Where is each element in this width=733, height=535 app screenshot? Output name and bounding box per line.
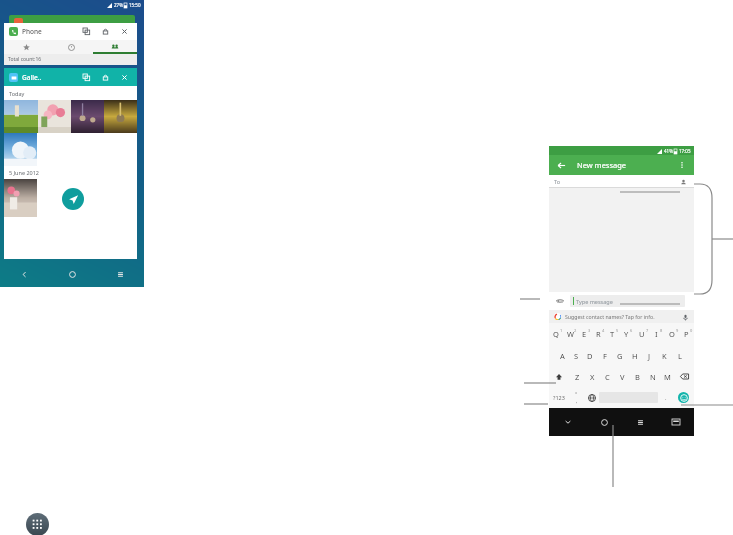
button[interactable]: To <box>549 175 694 188</box>
staticText: C <box>605 372 610 382</box>
button[interactable]: W <box>563 323 577 345</box>
button[interactable]: Split screen <box>81 72 92 83</box>
button[interactable]: Z <box>569 366 585 387</box>
button[interactable]: Photo <box>38 100 71 133</box>
staticText: To <box>554 178 561 185</box>
staticText: . <box>665 394 667 401</box>
button[interactable]: E <box>577 323 591 345</box>
button[interactable]: H <box>627 345 642 366</box>
button[interactable]: S <box>569 345 583 366</box>
button[interactable]: Send <box>62 188 84 210</box>
button[interactable]: Delete <box>675 366 694 387</box>
staticText: 7 <box>646 328 649 333</box>
staticText: Total count:16 <box>8 56 42 63</box>
staticText: T <box>610 329 615 339</box>
button[interactable]: U <box>634 323 649 345</box>
staticText: ° <box>575 391 578 398</box>
button[interactable]: Emoji <box>673 387 694 408</box>
staticText: I <box>655 329 658 339</box>
staticText: 8 <box>660 328 663 333</box>
button[interactable]: Shift <box>549 366 569 387</box>
button[interactable]: O <box>664 323 679 345</box>
button[interactable]: Apps <box>26 513 49 535</box>
button[interactable]: Lock <box>100 72 111 83</box>
button[interactable]: Photo <box>4 179 37 217</box>
button[interactable]: B <box>630 366 645 387</box>
staticText: Z <box>575 372 580 382</box>
button[interactable]: Close <box>119 26 130 37</box>
button[interactable]: Y <box>619 323 634 345</box>
button[interactable]: T <box>605 323 619 345</box>
staticText: 5 June 2012 <box>9 169 39 176</box>
button[interactable]: Type message <box>570 295 685 307</box>
staticText: 1 <box>560 328 563 333</box>
staticText: B <box>635 372 640 382</box>
staticText: , <box>576 398 578 405</box>
button[interactable]: Recents <box>96 261 144 287</box>
staticText: 5 <box>616 328 619 333</box>
button[interactable]: A <box>555 345 569 366</box>
button[interactable]: F <box>597 345 612 366</box>
button[interactable]: More options <box>676 159 688 171</box>
staticText: O <box>669 329 675 339</box>
button[interactable]: X <box>585 366 600 387</box>
button[interactable]: Photo <box>71 100 104 133</box>
button[interactable]: C <box>600 366 615 387</box>
button[interactable]: I <box>649 323 664 345</box>
button[interactable]: N <box>645 366 660 387</box>
staticText: Y <box>624 329 629 339</box>
button[interactable] <box>4 40 49 54</box>
button[interactable]: Recents <box>622 408 658 436</box>
staticText: 9 <box>676 328 679 333</box>
button[interactable]: Q <box>549 323 563 345</box>
button[interactable]: L <box>672 345 687 366</box>
button[interactable]: Voice input <box>681 313 689 321</box>
button[interactable]: D <box>583 345 597 366</box>
button[interactable] <box>93 40 137 54</box>
button[interactable]: Switch keyboard <box>658 408 694 436</box>
staticText: E <box>582 329 587 339</box>
button[interactable]: Language <box>584 387 599 408</box>
button[interactable]: Add contact <box>679 178 687 186</box>
button[interactable]: V <box>615 366 630 387</box>
button[interactable]: Photo <box>104 100 137 133</box>
staticText: W <box>567 329 574 339</box>
button[interactable]: Home <box>48 261 96 287</box>
staticText: New message <box>577 160 627 170</box>
staticText: 6 <box>630 328 633 333</box>
button[interactable]: Back <box>555 159 567 171</box>
button[interactable]: Home <box>586 408 622 436</box>
staticText: Type message <box>576 298 613 305</box>
button[interactable]: ?123 <box>549 387 569 408</box>
staticText: L <box>678 351 682 361</box>
button[interactable]: Hide keyboard <box>549 408 586 436</box>
button[interactable]: J <box>642 345 657 366</box>
staticText: 17:05 <box>679 148 691 154</box>
staticText: V <box>620 372 625 382</box>
staticText: X <box>590 372 595 382</box>
button[interactable] <box>49 40 93 54</box>
button[interactable]: K <box>657 345 672 366</box>
staticText: S <box>574 351 579 361</box>
button[interactable]: Back <box>0 261 48 287</box>
button[interactable]: Split screen <box>81 26 92 37</box>
staticText: M <box>664 372 671 382</box>
staticText: 3 <box>588 328 591 333</box>
staticText: P <box>684 329 689 339</box>
button[interactable]: ° <box>569 387 584 408</box>
staticText: 41% <box>664 148 673 154</box>
staticText: 2 <box>574 328 577 333</box>
button[interactable]: Photo <box>4 133 37 166</box>
staticText: F <box>603 351 607 361</box>
button[interactable]: M <box>660 366 675 387</box>
button[interactable]: Photo <box>4 100 38 133</box>
button[interactable]: G <box>612 345 627 366</box>
button[interactable]: Attach <box>555 296 565 306</box>
staticText: Today <box>9 90 25 97</box>
button[interactable]: Close <box>119 72 130 83</box>
button[interactable]: R <box>591 323 605 345</box>
button[interactable]: Lock <box>100 26 111 37</box>
button[interactable]: P <box>679 323 694 345</box>
